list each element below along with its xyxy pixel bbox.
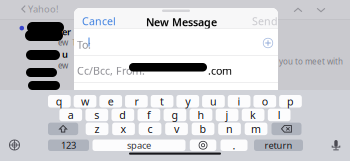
button[interactable]: . (220, 139, 247, 151)
button[interactable]: space (92, 139, 185, 151)
button[interactable]: q (48, 95, 71, 107)
button[interactable]: b (192, 123, 214, 135)
button[interactable]: 123 (48, 139, 89, 151)
button[interactable]: g (164, 109, 186, 121)
button[interactable]: Add contact (261, 36, 275, 50)
staticText: e (108, 94, 114, 108)
staticText: y (185, 94, 190, 108)
staticText: k (250, 108, 256, 122)
button[interactable]: i (228, 95, 250, 107)
staticText: s (94, 108, 99, 122)
button[interactable]: s (85, 109, 108, 121)
staticText: er (62, 25, 71, 38)
button[interactable]: a (59, 109, 82, 121)
button[interactable]: Switch keyboard (6, 137, 22, 153)
button[interactable]: x (112, 123, 135, 135)
button[interactable]: Cancel (82, 15, 116, 27)
staticText: 123 (61, 139, 76, 151)
staticText: g (171, 108, 178, 122)
staticText: Cancel (82, 14, 116, 28)
button[interactable]: m (245, 123, 267, 135)
button[interactable]: e (99, 95, 122, 107)
staticText: c (147, 122, 152, 136)
staticText: u (210, 94, 217, 108)
button[interactable]: o (253, 95, 276, 107)
button[interactable]: l (268, 109, 290, 121)
button[interactable]: k (242, 109, 264, 121)
button[interactable]: At sign (190, 139, 216, 151)
staticText: u (62, 48, 68, 60)
staticText: o (262, 94, 268, 108)
button[interactable]: j (216, 109, 238, 121)
staticText: t (160, 94, 164, 108)
staticText: ew (58, 60, 68, 71)
button[interactable]: return (254, 139, 303, 151)
staticText: p (287, 94, 294, 108)
staticText: f (147, 108, 151, 122)
staticText: m (251, 122, 261, 136)
staticText: j (226, 108, 229, 122)
staticText: l (278, 108, 281, 122)
button[interactable]: w (74, 95, 96, 107)
staticText: h (197, 108, 204, 122)
button[interactable]: y (176, 95, 199, 107)
button[interactable]: z (86, 123, 108, 135)
button[interactable]: u (202, 95, 225, 107)
button[interactable]: v (165, 123, 188, 135)
button[interactable]: h (190, 109, 212, 121)
button[interactable]: Shift (48, 123, 78, 135)
staticText: ew T (58, 37, 76, 48)
staticText: Yahoo! (28, 3, 59, 15)
staticText: return (264, 139, 292, 151)
staticText: New Message (146, 15, 217, 29)
staticText: z (94, 122, 99, 136)
staticText: n (226, 122, 233, 136)
staticText: you to meet with (279, 56, 343, 67)
button[interactable]: p (279, 95, 302, 107)
staticText: To: (77, 37, 91, 52)
staticText: w (81, 94, 89, 108)
staticText: Subject: (77, 90, 118, 104)
button[interactable]: d (111, 109, 134, 121)
staticText: r (134, 94, 138, 108)
button[interactable]: f (138, 109, 160, 121)
staticText: d (119, 108, 126, 122)
staticText: Cc/Bcc, From: (77, 63, 145, 78)
staticText: i (238, 94, 241, 108)
button[interactable]: Next message (314, 3, 328, 17)
staticText: . (232, 138, 235, 152)
staticText: .com (208, 63, 232, 78)
button[interactable]: Previous message (291, 3, 305, 17)
staticText: q (56, 94, 63, 108)
button[interactable]: n (218, 123, 241, 135)
staticText: b (199, 122, 206, 136)
button[interactable]: r (125, 95, 148, 107)
staticText: Send (252, 14, 278, 28)
button[interactable]: Send (252, 15, 278, 27)
staticText: x (120, 122, 126, 136)
staticText: v (174, 122, 179, 136)
button[interactable]: Delete (271, 123, 301, 135)
button[interactable]: Dictate (328, 137, 344, 153)
button[interactable]: Yahoo! (21, 3, 59, 15)
button[interactable]: c (139, 123, 161, 135)
button[interactable]: t (151, 95, 173, 107)
staticText: a (68, 108, 74, 122)
staticText: space (127, 139, 151, 151)
